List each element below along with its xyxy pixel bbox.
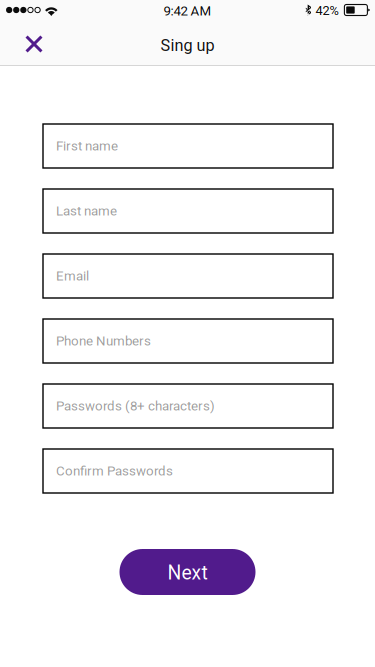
button[interactable]: Last name — [43, 189, 333, 233]
staticText: Next — [167, 562, 207, 584]
staticText: Passwords (8+ characters) — [56, 398, 215, 414]
staticText: Last name — [56, 203, 117, 219]
staticText: Confirm Passwords — [56, 463, 173, 479]
button[interactable]: Next — [119, 549, 255, 595]
button[interactable]: Close — [11, 20, 57, 66]
staticText: Email — [56, 268, 89, 284]
staticText: Phone Numbers — [56, 333, 151, 349]
staticText: Sing up — [160, 36, 214, 55]
staticText: First name — [56, 138, 118, 154]
button[interactable]: Phone Numbers — [43, 319, 333, 363]
staticText: 42% — [315, 3, 338, 18]
button[interactable]: First name — [43, 124, 333, 168]
button[interactable]: Email — [43, 254, 333, 298]
button[interactable]: Passwords (8+ characters) — [43, 384, 333, 428]
button[interactable]: Confirm Passwords — [43, 449, 333, 493]
staticText: 9:42 AM — [163, 3, 211, 19]
